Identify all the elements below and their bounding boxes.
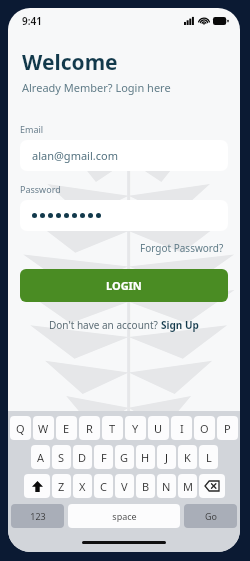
button[interactable]: Z [52,474,71,498]
staticText: Z [58,479,65,494]
button[interactable]: W [33,416,54,440]
staticText: K [184,450,191,465]
button[interactable]: T [102,416,123,440]
button[interactable]: J [157,445,176,469]
staticText: H [141,450,150,465]
staticText: Welcome [22,48,118,77]
button[interactable]: Sign Up [161,318,199,332]
button[interactable] [20,200,228,231]
staticText: B [142,479,150,494]
button[interactable]: P [217,416,238,440]
button[interactable]: V [115,474,134,498]
button[interactable]: Go [184,504,237,528]
staticText: N [162,479,171,494]
button[interactable]: M [178,474,197,498]
staticText: space [112,510,137,522]
staticText: U [154,421,163,436]
other: Backspace [205,481,219,491]
button[interactable]: N [157,474,176,498]
staticText: R [86,421,93,436]
staticText: W [38,421,49,436]
staticText: J [165,450,169,465]
staticText: A [37,450,45,465]
button[interactable]: Backspace [199,474,225,498]
staticText: Y [132,421,139,436]
staticText: 9:41 [22,14,42,28]
staticText: O [200,421,209,436]
staticText: F [101,450,107,465]
button[interactable]: Q [10,416,31,440]
staticText: 123 [30,510,46,522]
button[interactable]: A [31,445,50,469]
button[interactable]: 123 [11,504,64,528]
button[interactable]: alan@gmail.com [20,140,228,171]
staticText: G [120,450,129,465]
staticText: Email [20,123,44,135]
button[interactable]: Y [125,416,146,440]
button[interactable]: U [148,416,169,440]
button[interactable]: Forgot Password? [136,237,228,259]
button[interactable]: O [194,416,215,440]
staticText: Don't have an account? [49,318,161,332]
staticText: Sign Up [161,318,199,332]
button[interactable]: E [56,416,77,440]
staticText: I [180,421,184,436]
button[interactable]: LOGIN [20,269,228,302]
button[interactable]: space [68,504,180,528]
button[interactable]: X [73,474,92,498]
button[interactable]: L [199,445,218,469]
button[interactable]: H [136,445,155,469]
staticText: M [183,479,193,494]
staticText: V [121,479,128,494]
staticText: Forgot Password? [140,241,224,255]
button[interactable]: I [171,416,192,440]
button[interactable]: R [79,416,100,440]
button[interactable]: K [178,445,197,469]
button[interactable]: G [115,445,134,469]
button[interactable]: Shift [24,474,50,498]
button[interactable]: B [136,474,155,498]
staticText: P [224,421,231,436]
staticText: alan@gmail.com [32,148,118,163]
staticText: L [206,450,212,465]
staticText: T [109,421,116,436]
button[interactable]: C [94,474,113,498]
staticText: Q [16,421,25,436]
staticText: Go [205,510,217,522]
staticText: D [78,450,87,465]
staticText: X [79,479,86,494]
staticText: LOGIN [106,278,142,293]
staticText: E [63,421,70,436]
staticText: S [58,450,65,465]
button[interactable]: F [94,445,113,469]
staticText: C [100,479,107,494]
staticText: Already Member? Login here [22,80,171,95]
button[interactable]: D [73,445,92,469]
button[interactable]: S [52,445,71,469]
staticText: Password [20,183,61,195]
other: Shift [32,481,43,492]
